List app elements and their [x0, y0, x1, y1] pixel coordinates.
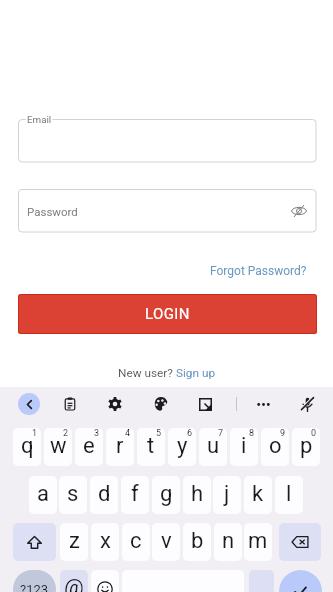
staticText: 0 — [311, 428, 317, 439]
button[interactable]: Backspace — [279, 523, 321, 561]
button[interactable]: z — [60, 523, 88, 561]
staticText: l — [286, 481, 292, 507]
staticText: 3 — [94, 428, 100, 439]
staticText: v — [161, 528, 172, 554]
button[interactable]: m — [244, 523, 272, 561]
button[interactable]: Keyboard tool — [59, 393, 81, 415]
staticText: 8 — [249, 428, 255, 439]
button[interactable]: Show password — [286, 198, 312, 224]
staticText: 4 — [125, 428, 131, 439]
button[interactable]: y — [168, 428, 196, 466]
button[interactable]: l — [275, 476, 303, 514]
staticText: n — [222, 528, 235, 554]
staticText: f — [131, 481, 139, 507]
button[interactable]: o — [261, 428, 289, 466]
button[interactable]: Back — [18, 393, 40, 415]
staticText: 7 — [218, 428, 224, 439]
button[interactable]: j — [213, 476, 241, 514]
button[interactable]: i — [230, 428, 258, 466]
staticText: i — [241, 433, 247, 459]
staticText: New user? — [118, 366, 176, 380]
button[interactable]: Forgot Password? — [202, 259, 315, 283]
staticText: c — [130, 528, 142, 554]
staticText: LOGIN — [145, 305, 190, 323]
staticText: 9 — [280, 428, 286, 439]
staticText: 2 — [63, 428, 69, 439]
staticText: u — [207, 433, 220, 459]
button[interactable]: x — [91, 523, 119, 561]
button[interactable]: w — [44, 428, 72, 466]
staticText: q — [21, 433, 34, 459]
button[interactable]: Keyboard tool — [252, 393, 274, 415]
staticText: Password — [27, 205, 78, 218]
button[interactable]: Keyboard tool — [296, 393, 318, 415]
button[interactable]: b — [183, 523, 211, 561]
button[interactable]: Keyboard tool — [194, 393, 216, 415]
button[interactable]: Keyboard tool — [104, 393, 126, 415]
button[interactable]: f — [121, 476, 149, 514]
button[interactable]: Sign up — [176, 366, 216, 380]
button[interactable]: d — [90, 476, 118, 514]
staticText: t — [147, 433, 155, 459]
button[interactable]: e — [75, 428, 103, 466]
staticText: 1 — [32, 428, 38, 439]
staticText: b — [191, 528, 204, 554]
button[interactable]: Keyboard tool — [150, 393, 172, 415]
button[interactable]: a — [29, 476, 57, 514]
button[interactable]: h — [183, 476, 211, 514]
staticText: g — [160, 481, 173, 507]
button[interactable]: Emoji — [91, 570, 119, 592]
button[interactable]: p — [292, 428, 320, 466]
staticText: h — [191, 481, 204, 507]
button[interactable]: c — [122, 523, 150, 561]
staticText: ?123 — [20, 582, 49, 592]
staticText: m — [248, 528, 268, 554]
staticText: 6 — [187, 428, 193, 439]
staticText: d — [98, 481, 111, 507]
staticText: s — [67, 481, 79, 507]
staticText: a — [37, 481, 49, 507]
button[interactable]: Shift — [13, 523, 56, 561]
staticText: e — [83, 433, 95, 459]
button[interactable]: s — [59, 476, 87, 514]
button[interactable]: n — [214, 523, 242, 561]
button[interactable]: @ — [60, 570, 88, 592]
button[interactable]: Enter — [279, 570, 322, 592]
staticText: o — [269, 433, 282, 459]
button[interactable]: LOGIN — [19, 295, 316, 333]
staticText: w — [50, 433, 67, 459]
staticText: Email — [27, 114, 52, 125]
staticText: r — [116, 433, 124, 459]
button[interactable]: t — [137, 428, 165, 466]
button[interactable]: ?123 — [13, 570, 56, 592]
staticText: p — [300, 433, 313, 459]
button[interactable]: v — [152, 523, 180, 561]
staticText: Sign up — [176, 366, 216, 380]
button[interactable]: r — [106, 428, 134, 466]
button[interactable]: g — [152, 476, 180, 514]
button[interactable]: k — [244, 476, 272, 514]
staticText: y — [177, 433, 188, 459]
staticText: 5 — [156, 428, 162, 439]
button[interactable]: u — [199, 428, 227, 466]
button[interactable]: q — [13, 428, 41, 466]
staticText: Forgot Password? — [210, 264, 307, 278]
staticText: k — [252, 481, 264, 507]
staticText: z — [69, 528, 80, 554]
staticText: x — [100, 528, 111, 554]
staticText: @ — [64, 575, 84, 592]
staticText: j — [224, 481, 230, 507]
